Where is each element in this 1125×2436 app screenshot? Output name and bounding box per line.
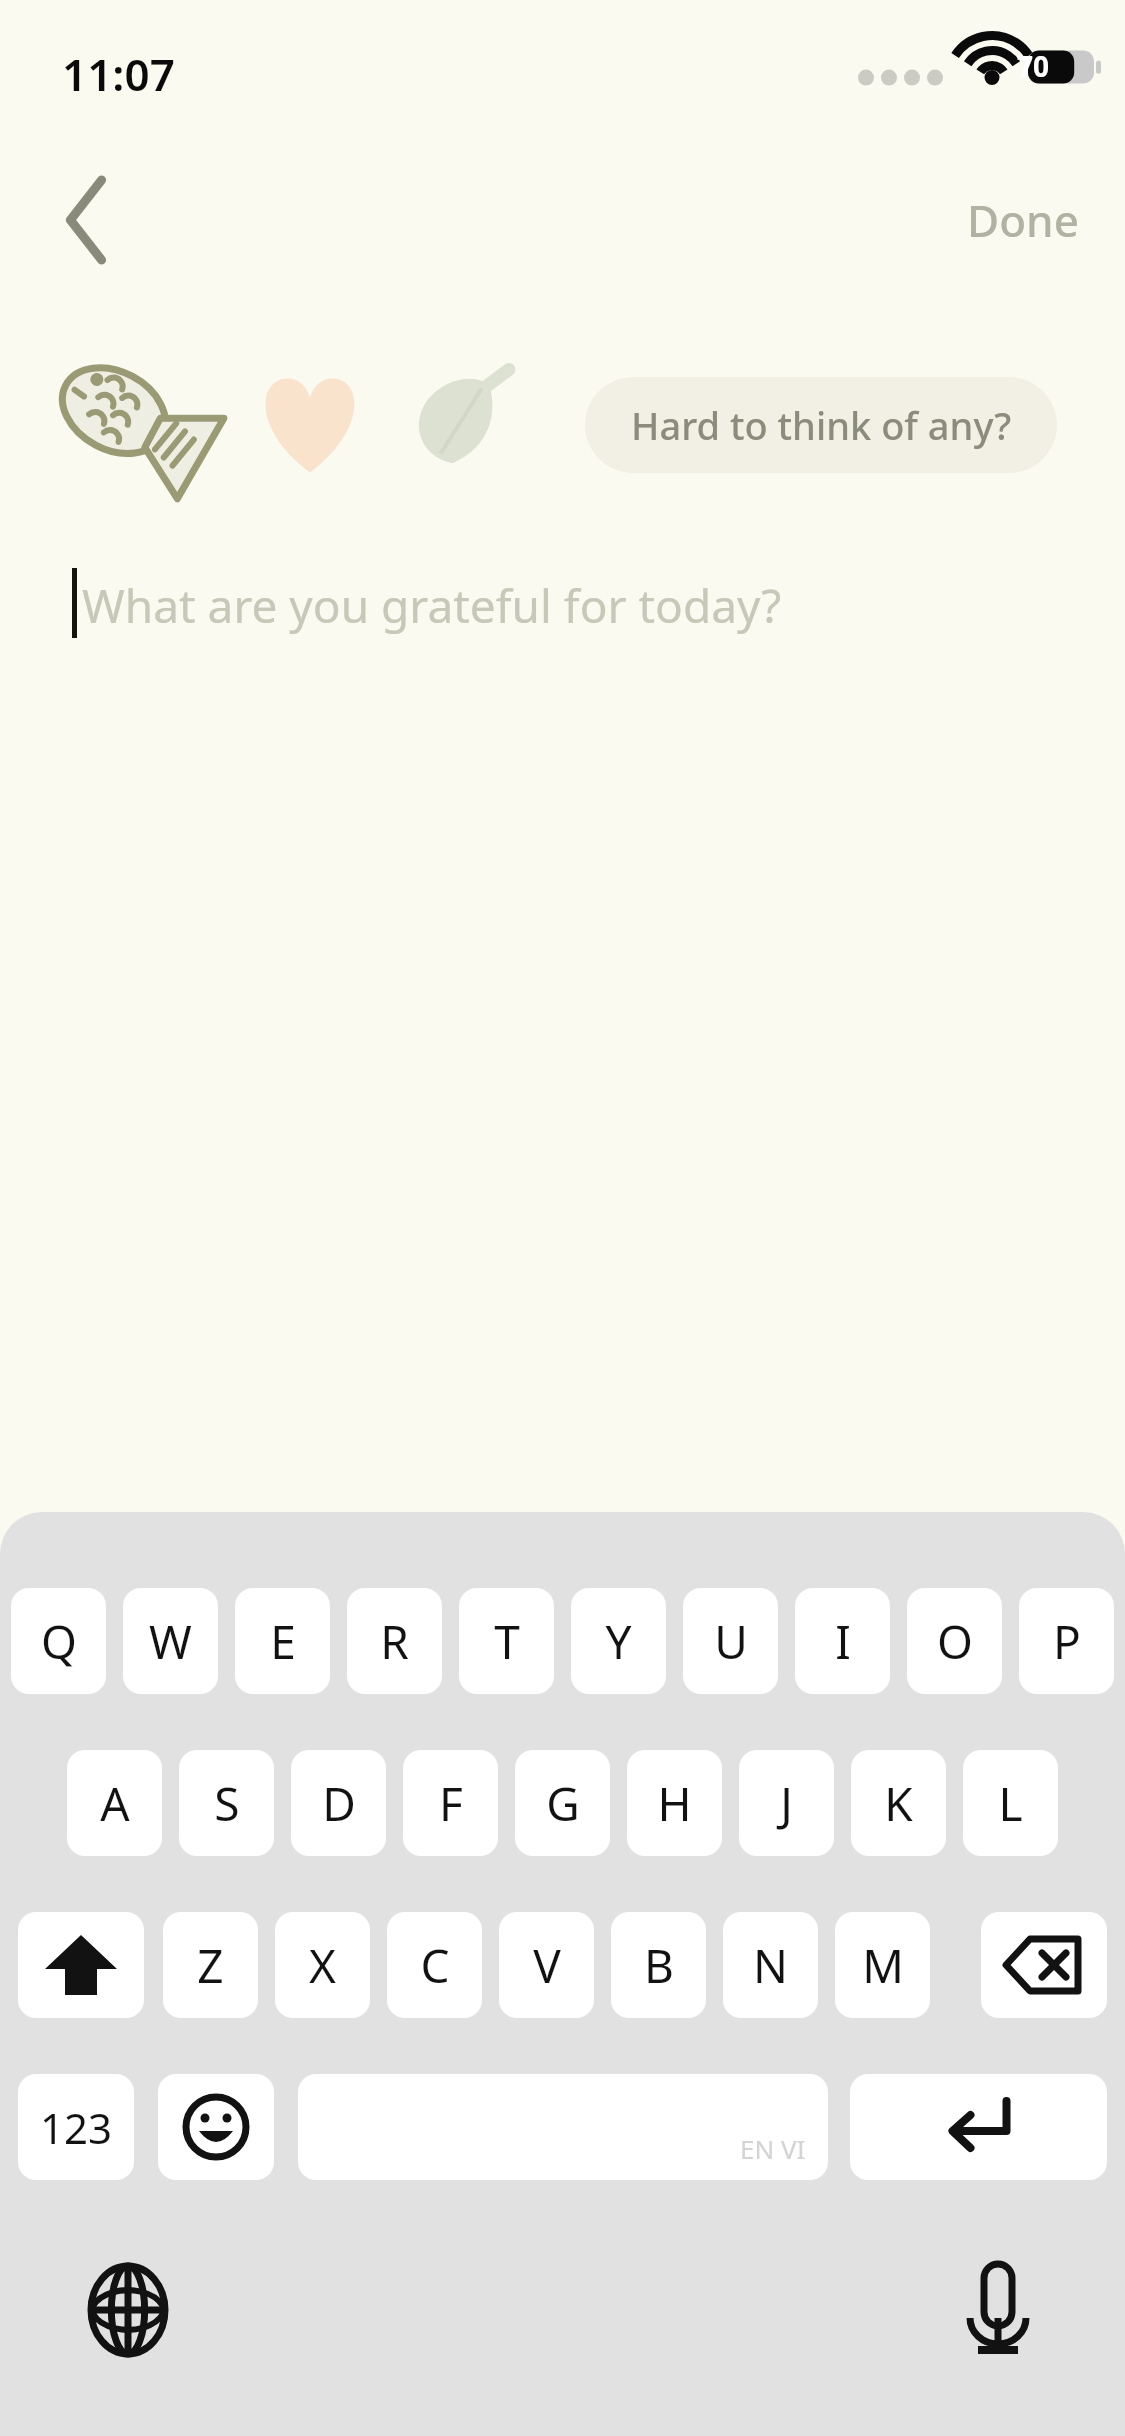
button[interactable]: H [627,1750,722,1856]
button[interactable]: Voice input [948,2260,1048,2360]
button[interactable]: R [347,1588,442,1694]
staticText: F [439,1772,463,1835]
staticText: R [380,1610,409,1673]
button[interactable]: B [611,1912,706,2018]
button[interactable]: What are you grateful for today? [0,560,1125,670]
button[interactable]: A [67,1750,162,1856]
button[interactable]: Backspace [981,1912,1107,2018]
staticText: 123 [40,2099,113,2156]
button[interactable]: Q [11,1588,106,1694]
staticText: What are you grateful for today? [82,574,782,637]
button[interactable]: O [907,1588,1002,1694]
button[interactable]: I [795,1588,890,1694]
staticText: Y [605,1610,632,1673]
staticText: D [322,1772,356,1835]
button[interactable]: E [235,1588,330,1694]
button[interactable]: Heart sticker [250,362,370,482]
button[interactable]: U [683,1588,778,1694]
button[interactable]: Shift [18,1912,144,2018]
staticText: X [309,1934,336,1997]
staticText: C [420,1934,450,1997]
button[interactable]: X [275,1912,370,2018]
staticText: G [546,1772,580,1835]
button[interactable]: K [851,1750,946,1856]
button[interactable]: Done [943,172,1103,268]
button[interactable]: Leaf sticker [395,360,515,480]
button[interactable]: N [723,1912,818,2018]
staticText: N [753,1934,788,1997]
button[interactable]: Hard to think of any? [585,377,1057,473]
button[interactable]: Enter [850,2074,1107,2180]
button[interactable]: Y [571,1588,666,1694]
staticText: O [937,1610,973,1673]
staticText: H [657,1772,692,1835]
staticText: J [780,1772,793,1835]
staticText: EN VI [740,2131,806,2166]
button[interactable]: Z [163,1912,258,2018]
button[interactable]: L [963,1750,1058,1856]
button[interactable]: W [123,1588,218,1694]
staticText: T [494,1610,520,1673]
button[interactable]: J [739,1750,834,1856]
staticText: 70 [1017,47,1050,85]
staticText: B [644,1934,674,1997]
button[interactable]: S [179,1750,274,1856]
button[interactable]: M [835,1912,930,2018]
button[interactable]: Emoji [158,2074,274,2180]
staticText: K [884,1772,913,1835]
staticText: 11:07 [62,44,175,104]
staticText: S [214,1772,240,1835]
staticText: A [100,1772,130,1835]
staticText: I [835,1610,851,1673]
staticText: V [533,1934,561,1997]
staticText: Q [41,1610,77,1673]
staticText: Hard to think of any? [631,399,1012,451]
staticText: P [1053,1610,1081,1673]
button[interactable]: Numbers [18,2074,134,2180]
staticText: Done [967,190,1079,250]
button[interactable]: T [459,1588,554,1694]
button[interactable]: P [1019,1588,1114,1694]
staticText: L [998,1772,1023,1835]
button[interactable]: F [403,1750,498,1856]
staticText: M [862,1934,904,1997]
button[interactable]: V [499,1912,594,2018]
button[interactable]: Fish sticker [52,348,217,498]
staticText: Z [197,1934,224,1997]
staticText: W [149,1610,192,1673]
staticText: U [714,1610,748,1673]
staticText: E [270,1610,296,1673]
button[interactable]: Back [34,170,134,270]
button[interactable]: G [515,1750,610,1856]
button[interactable]: C [387,1912,482,2018]
button[interactable]: Space [298,2074,828,2180]
button[interactable]: Change language [78,2260,178,2360]
button[interactable]: D [291,1750,386,1856]
